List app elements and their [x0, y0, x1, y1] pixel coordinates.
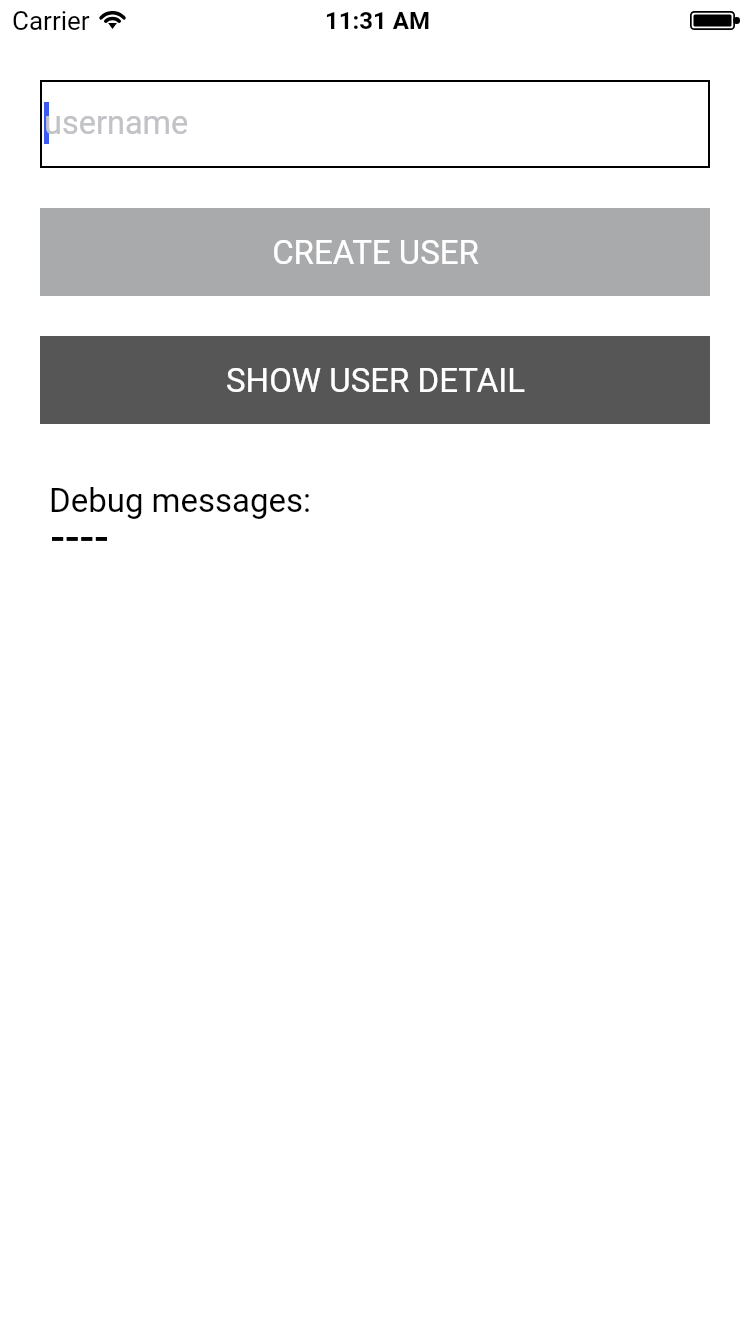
other: Wi-Fi signal: [100, 11, 125, 29]
staticText: Debug messages:: [49, 481, 312, 520]
staticText: SHOW USER DETAIL: [226, 361, 525, 400]
staticText: Carrier: [12, 6, 90, 36]
button[interactable]: CREATE USER: [40, 208, 710, 296]
button[interactable]: username: [40, 80, 710, 168]
staticText: username: [44, 104, 189, 142]
button[interactable]: SHOW USER DETAIL: [40, 336, 710, 424]
staticText: CREATE USER: [272, 233, 479, 272]
staticText: 11:31 AM: [325, 7, 431, 35]
other: Battery full: [690, 11, 740, 30]
